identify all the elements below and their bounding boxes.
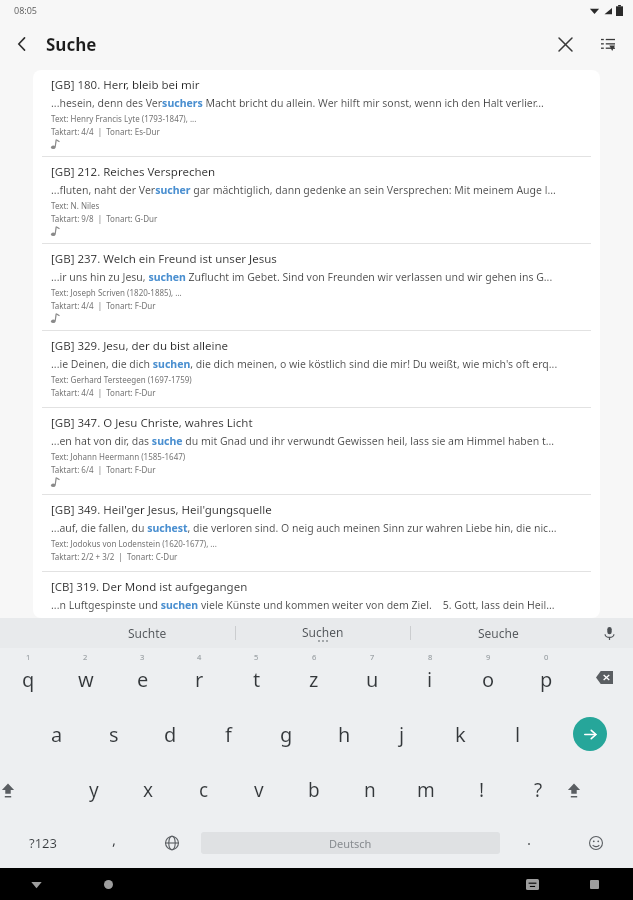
staticText: [GB] 212. Reiches Versprechen (51, 164, 216, 180)
staticText: 2 (83, 652, 88, 662)
staticText: r (195, 666, 204, 693)
staticText: y (89, 777, 99, 803)
staticText: u (366, 666, 379, 693)
button[interactable]: 2 (57, 648, 114, 706)
staticText: 1 (26, 652, 31, 662)
button[interactable]: b (286, 762, 342, 818)
staticText: Taktart: 4/4 | Tonart: Es-Dur (51, 126, 160, 137)
staticText: Text: Johann Heermann (1585-1647) (51, 451, 186, 462)
button[interactable]: Filter options (587, 23, 629, 65)
button[interactable]: j (373, 706, 431, 762)
button[interactable]: l (489, 706, 547, 762)
staticText: d (164, 721, 177, 748)
button[interactable]: , (85, 818, 143, 868)
staticText: p (540, 666, 553, 693)
button[interactable]: y (66, 762, 121, 818)
staticText: Taktart: 4/4 | Tonart: F-Dur (51, 387, 156, 398)
button[interactable]: ! (454, 762, 510, 818)
staticText: , (112, 829, 117, 849)
staticText: ...hesein, denn des Versuchers Macht bri… (51, 96, 544, 110)
button[interactable]: [GB] 347. O Jesu Christe, wahres Licht (33, 408, 600, 494)
staticText: l (515, 721, 521, 748)
staticText: e (137, 666, 149, 693)
staticText: n (364, 777, 376, 803)
button[interactable]: 8 (401, 648, 459, 706)
button[interactable]: Change language (143, 818, 201, 868)
button[interactable]: g (257, 706, 315, 762)
staticText: o (482, 666, 495, 693)
button[interactable]: Suchte (60, 618, 235, 648)
staticText: [GB] 237. Welch ein Freund ist unser Jes… (51, 251, 277, 267)
staticText: Text: Gerhard Tersteegen (1697-1759) (51, 374, 192, 385)
button[interactable]: Hide keyboard (0, 868, 72, 900)
button[interactable]: Keyboard layout (501, 868, 563, 900)
staticText: Suche (46, 33, 97, 56)
staticText: m (417, 777, 435, 803)
button[interactable]: h (315, 706, 373, 762)
staticText: z (309, 666, 319, 693)
staticText: f (225, 721, 232, 748)
button[interactable]: [GB] 237. Welch ein Freund ist unser Jes… (33, 244, 600, 330)
staticText: a (51, 721, 63, 748)
button[interactable]: Suchen (236, 618, 410, 648)
button[interactable]: 1 (0, 648, 57, 706)
button[interactable]: Shift (0, 762, 16, 818)
staticText: [GB] 329. Jesu, der du bist alleine (51, 338, 229, 354)
button[interactable]: c (176, 762, 231, 818)
button[interactable]: a (28, 706, 85, 762)
staticText: 4 (197, 652, 202, 662)
button[interactable]: f (199, 706, 257, 762)
button[interactable]: Clear search (543, 22, 587, 66)
button[interactable]: Search (547, 706, 633, 762)
button[interactable]: [GB] 329. Jesu, der du bist alleine (33, 331, 600, 407)
button[interactable]: v (231, 762, 286, 818)
button[interactable]: [GB] 349. Heil'ger Jesus, Heil'gungsquel… (33, 495, 600, 571)
staticText: h (338, 721, 351, 748)
staticText: ...fluten, naht der Versucher gar mächti… (51, 183, 556, 197)
button[interactable]: n (342, 762, 398, 818)
button[interactable]: 3 (114, 648, 171, 706)
button[interactable]: x (121, 762, 176, 818)
button[interactable]: [GB] 180. Herr, bleib bei mir (33, 70, 600, 156)
staticText: . (527, 829, 532, 849)
staticText: [GB] 349. Heil'ger Jesus, Heil'gungsquel… (51, 502, 272, 518)
staticText: Suchen (302, 624, 344, 640)
button[interactable]: 7 (343, 648, 401, 706)
staticText: ...auf, die fallen, du suchest, die verl… (51, 521, 557, 535)
button[interactable]: Shift (566, 762, 582, 818)
staticText: 7 (370, 652, 375, 662)
button[interactable]: Emoji (558, 818, 633, 868)
button[interactable]: Back (0, 22, 44, 66)
button[interactable]: [CB] 319. Der Mond ist aufgegangen (33, 572, 600, 618)
button[interactable]: Recent apps (563, 868, 625, 900)
staticText: 8 (428, 652, 433, 662)
button[interactable]: 5 (228, 648, 285, 706)
button[interactable]: m (398, 762, 454, 818)
button[interactable]: Voice input (585, 618, 633, 648)
button[interactable]: ? (510, 762, 566, 818)
button[interactable]: k (431, 706, 489, 762)
staticText: w (78, 666, 94, 693)
staticText: t (253, 666, 261, 693)
staticText: ! (479, 777, 485, 803)
button[interactable]: ?123 (0, 818, 85, 868)
button[interactable]: 0 (517, 648, 575, 706)
staticText: s (109, 721, 119, 748)
staticText: ...ie Deinen, die dich suchen, die dich … (51, 357, 558, 371)
staticText: 5 (254, 652, 259, 662)
button[interactable]: 4 (171, 648, 228, 706)
staticText: c (199, 777, 209, 803)
button[interactable]: s (85, 706, 142, 762)
button[interactable]: [GB] 212. Reiches Versprechen (33, 157, 600, 243)
button[interactable]: Backspace (575, 648, 633, 706)
button[interactable]: d (142, 706, 199, 762)
staticText: [GB] 180. Herr, bleib bei mir (51, 77, 200, 93)
button[interactable]: . (500, 818, 558, 868)
button[interactable]: Seuche (411, 618, 585, 648)
button[interactable]: 9 (459, 648, 517, 706)
staticText: i (427, 666, 433, 693)
button[interactable]: Home (72, 868, 144, 900)
button[interactable]: Deutsch (201, 818, 500, 868)
button[interactable]: 6 (285, 648, 343, 706)
staticText: q (22, 666, 35, 693)
